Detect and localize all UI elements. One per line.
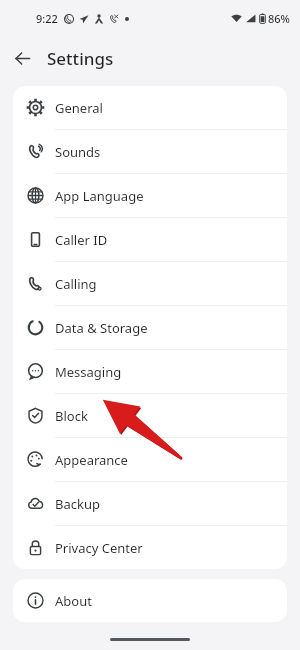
staticText: 9:22 (36, 11, 58, 26)
staticText: Messaging (55, 363, 122, 381)
staticText: 86% (268, 11, 290, 26)
staticText: Sounds (55, 143, 101, 161)
button[interactable]: Backup (13, 482, 287, 525)
button[interactable]: About (13, 579, 287, 622)
staticText: About (55, 592, 92, 610)
staticText: Settings (47, 47, 114, 70)
button[interactable]: Data & Storage (13, 306, 287, 349)
staticText: Appearance (55, 451, 128, 469)
button[interactable]: Block (13, 394, 287, 437)
staticText: General (55, 99, 103, 117)
button[interactable]: Back (8, 44, 36, 72)
staticText: Data & Storage (55, 319, 148, 337)
staticText: Backup (55, 495, 100, 513)
button[interactable]: Messaging (13, 350, 287, 393)
button[interactable]: Sounds (13, 130, 287, 173)
button[interactable]: App Language (13, 174, 287, 217)
button[interactable]: Appearance (13, 438, 287, 481)
button[interactable]: General (13, 86, 287, 129)
staticText: Block (55, 407, 88, 425)
button[interactable]: Privacy Center (13, 526, 287, 569)
staticText: App Language (55, 187, 144, 205)
staticText: Privacy Center (55, 539, 143, 557)
staticText: Caller ID (55, 231, 108, 249)
button[interactable]: Caller ID (13, 218, 287, 261)
button[interactable]: Calling (13, 262, 287, 305)
staticText: Calling (55, 275, 97, 293)
